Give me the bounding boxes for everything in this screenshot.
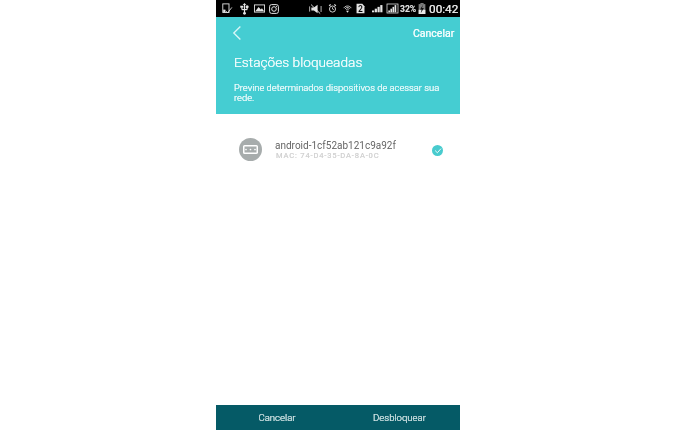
staticText: 00:42 [429, 2, 459, 16]
staticText: 32% [400, 4, 417, 14]
button[interactable]: Desbloquear [338, 405, 460, 430]
staticText: MAC: 74-D4-35-DA-8A-0C [276, 151, 380, 160]
button[interactable]: Cancelar [408, 22, 460, 44]
staticText: Estações bloqueadas [234, 54, 363, 70]
button[interactable]: android-1cf52ab121c9a92f [216, 114, 460, 170]
staticText: Desbloquear [373, 412, 426, 423]
button[interactable]: Cancelar [216, 405, 338, 430]
staticText: 2 [358, 4, 363, 14]
staticText: android-1cf52ab121c9a92f [275, 140, 396, 152]
button[interactable]: Voltar [226, 22, 248, 44]
button[interactable]: Selecionado [426, 139, 448, 161]
staticText: Previne determinados dispositivos de ace… [234, 82, 440, 104]
staticText: Cancelar [258, 412, 296, 423]
staticText: Cancelar [413, 27, 455, 39]
